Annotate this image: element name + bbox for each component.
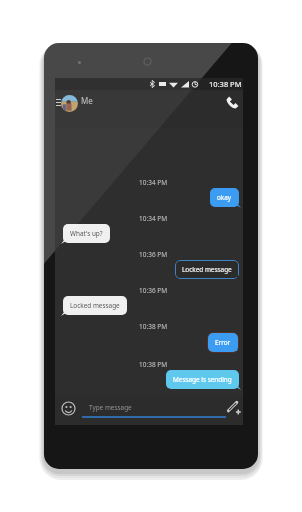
button[interactable]: Call xyxy=(222,92,242,112)
staticText: What's up? xyxy=(70,229,103,238)
staticText: Me xyxy=(81,95,93,106)
button[interactable]: Emoji xyxy=(59,399,78,418)
staticText: 10:38 PM xyxy=(139,322,168,330)
staticText: 10:34 PM xyxy=(139,214,168,222)
button[interactable]: Error xyxy=(208,333,238,352)
staticText: Locked message xyxy=(182,265,232,274)
button[interactable]: Locked message xyxy=(63,296,127,315)
button[interactable]: Attach xyxy=(224,398,243,417)
staticText: Error xyxy=(215,338,231,347)
staticText: 10:38 PM xyxy=(139,360,168,368)
staticText: 10:34 PM xyxy=(139,178,168,186)
staticText: 10:36 PM xyxy=(139,250,168,258)
button[interactable]: Menu xyxy=(51,91,65,113)
staticText: 10:38 PM xyxy=(209,79,242,89)
staticText: Locked message xyxy=(70,301,120,310)
button[interactable]: Message is sending xyxy=(166,370,239,389)
button[interactable]: What's up? xyxy=(63,224,110,243)
staticText: Type message xyxy=(89,403,132,412)
button[interactable]: okay xyxy=(210,188,239,207)
staticText: okay xyxy=(217,193,232,202)
button[interactable]: Profile photo xyxy=(61,95,78,112)
staticText: Message is sending xyxy=(173,375,232,384)
button[interactable]: Locked message xyxy=(175,260,239,279)
staticText: 10:36 PM xyxy=(139,286,168,294)
